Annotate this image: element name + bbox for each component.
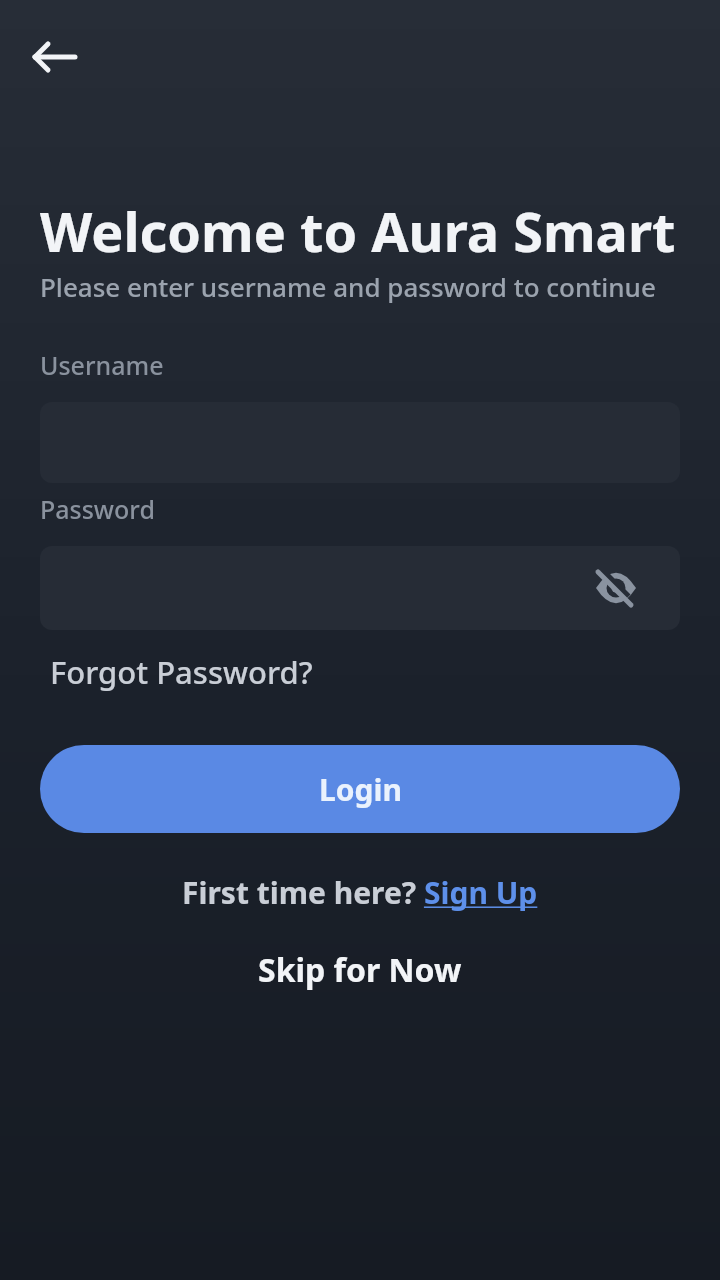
staticText: First time here? Sign Up [182,872,538,913]
button[interactable] [25,27,85,87]
button[interactable]: Login [40,745,680,833]
button[interactable]: First time here? Sign Up [182,872,538,913]
button[interactable]: Forgot Password? [50,651,313,693]
staticText: Username [40,348,164,382]
staticText: Password [40,492,155,526]
button[interactable]: Skip for Now [258,948,462,992]
staticText: Login [319,769,402,810]
staticText: Please enter username and password to co… [40,269,656,304]
staticText: Welcome to Aura Smart [40,194,676,268]
button[interactable] [594,566,638,610]
button[interactable] [40,546,680,630]
